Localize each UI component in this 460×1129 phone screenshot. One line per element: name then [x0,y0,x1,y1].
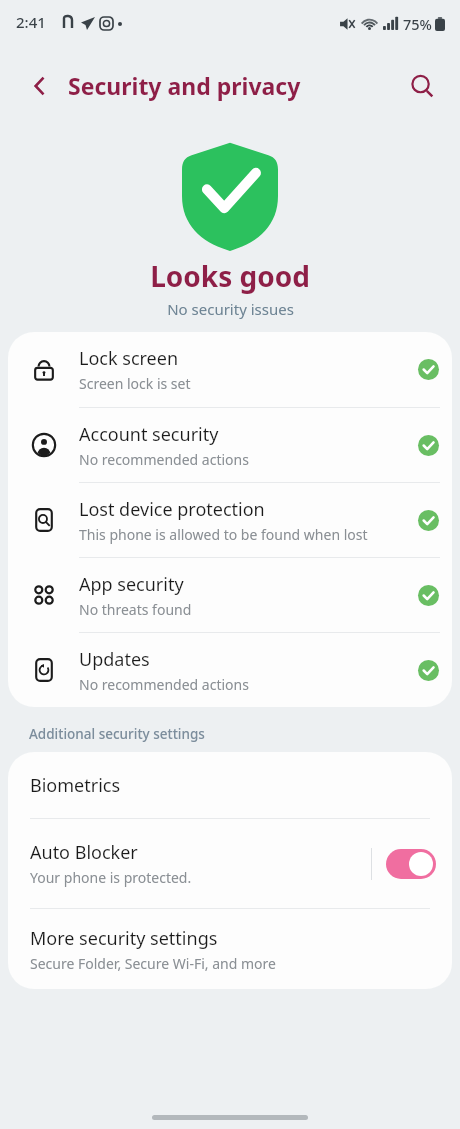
staticText: Secure Folder, Secure Wi-Fi, and more [30,954,276,973]
staticText: Account security [79,422,219,447]
button[interactable]: Account security [8,408,452,482]
staticText: This phone is allowed to be found when l… [79,525,368,544]
button[interactable]: Search [400,64,444,108]
button[interactable]: Back [18,64,62,108]
button[interactable]: Updates [8,633,452,707]
staticText: Screen lock is set [79,374,191,393]
button[interactable]: Lost device protection [8,483,452,557]
staticText: 2:41 [16,12,46,32]
staticText: Looks good [150,257,310,295]
staticText: 75% [403,14,432,34]
button[interactable]: More security settings [8,909,452,989]
staticText: No recommended actions [79,675,249,694]
button[interactable]: Auto Blocker toggle [386,849,436,879]
button[interactable]: Auto Blocker [30,840,371,887]
staticText: Your phone is protected. [30,868,192,887]
button[interactable]: Lock screen [8,332,452,407]
button[interactable]: Biometrics [8,752,452,818]
button[interactable]: App security [8,558,452,632]
staticText: Updates [79,647,150,672]
staticText: Auto Blocker [30,840,138,865]
staticText: Lock screen [79,346,179,371]
staticText: App security [79,572,184,597]
staticText: Additional security settings [29,725,205,743]
staticText: No threats found [79,600,192,619]
staticText: No recommended actions [79,450,249,469]
staticText: More security settings [30,926,218,951]
staticText: Biometrics [30,773,121,798]
staticText: Lost device protection [79,497,265,522]
staticText: Security and privacy [68,70,301,101]
staticText: No security issues [167,299,294,319]
